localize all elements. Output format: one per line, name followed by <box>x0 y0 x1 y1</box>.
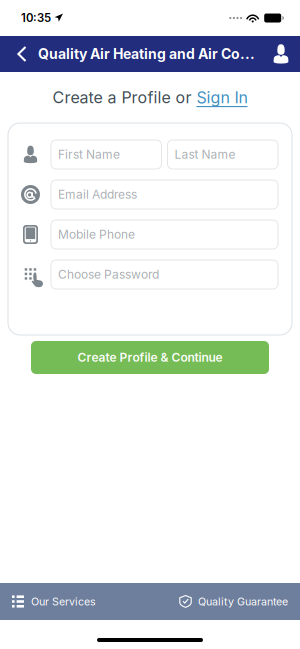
staticText: Email Address <box>58 187 137 202</box>
staticText: Mobile Phone <box>58 227 135 242</box>
staticText: 10:35 <box>21 11 51 25</box>
button[interactable]: Quality Guarantee <box>179 587 300 616</box>
button[interactable]: Our Services <box>0 587 96 616</box>
staticText: Our Services <box>31 595 96 608</box>
button[interactable]: Back <box>6 36 38 72</box>
staticText: Sign In <box>196 88 247 107</box>
staticText: First Name <box>58 147 120 162</box>
staticText: Quality Guarantee <box>198 595 288 608</box>
button[interactable]: Sign In <box>196 88 247 107</box>
staticText: Last Name <box>174 147 235 162</box>
staticText: Create a Profile or <box>52 88 196 107</box>
staticText: Create Profile & Continue <box>77 350 222 365</box>
staticText: Quality Air Heating and Air Co... <box>38 45 255 62</box>
button[interactable]: Account <box>264 36 298 72</box>
staticText: Choose Password <box>58 267 159 282</box>
button[interactable]: Create Profile & Continue <box>0 335 300 374</box>
